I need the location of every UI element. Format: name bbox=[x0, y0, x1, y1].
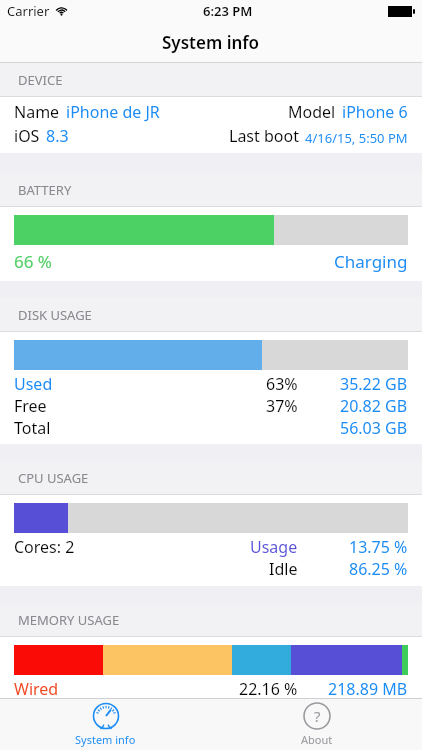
staticText: Last boot bbox=[229, 125, 299, 147]
staticText: Name bbox=[14, 101, 60, 123]
staticText: Charging bbox=[334, 250, 408, 273]
staticText: 35.22 GB bbox=[340, 373, 408, 395]
staticText: Free bbox=[14, 395, 47, 417]
staticText: 56.03 GB bbox=[340, 417, 408, 439]
staticText: Cores: 2 bbox=[14, 536, 75, 558]
staticText: BATTERY bbox=[18, 181, 72, 199]
staticText: 37% bbox=[266, 395, 298, 417]
staticText: Model bbox=[288, 101, 336, 123]
staticText: 66 % bbox=[14, 250, 52, 273]
staticText: System info bbox=[162, 31, 260, 54]
staticText: 4/16/15, 5:50 PM bbox=[305, 129, 408, 147]
staticText: 86.25 % bbox=[349, 558, 408, 580]
staticText: ? bbox=[314, 706, 321, 726]
staticText: Wired bbox=[14, 678, 59, 700]
staticText: Used bbox=[14, 373, 53, 395]
button[interactable]: System info bbox=[0, 699, 211, 750]
staticText: 8.3 bbox=[46, 125, 69, 147]
button[interactable]: About bbox=[211, 699, 422, 750]
staticText: Idle bbox=[269, 558, 298, 580]
staticText: 63% bbox=[266, 373, 298, 395]
staticText: 22.16 % bbox=[239, 678, 298, 700]
staticText: iPhone de JR bbox=[66, 101, 160, 123]
staticText: MEMORY USAGE bbox=[18, 611, 120, 629]
staticText: 218.89 MB bbox=[328, 678, 408, 700]
other: About bbox=[303, 702, 331, 730]
staticText: Total bbox=[14, 417, 51, 439]
staticText: 20.82 GB bbox=[340, 395, 408, 417]
other: System info bbox=[92, 702, 120, 730]
staticText: 13.75 % bbox=[349, 536, 408, 558]
staticText: CPU USAGE bbox=[18, 469, 89, 487]
staticText: About bbox=[301, 732, 333, 747]
staticText: iPhone 6 bbox=[342, 101, 408, 123]
staticText: Carrier bbox=[7, 2, 50, 20]
staticText: iOS bbox=[14, 125, 40, 147]
staticText: Usage bbox=[250, 536, 298, 558]
staticText: 300.00 MB bbox=[328, 700, 408, 722]
staticText: DEVICE bbox=[18, 71, 63, 89]
staticText: DISK USAGE bbox=[18, 306, 92, 324]
staticText: 6:23 PM bbox=[203, 2, 253, 20]
staticText: System info bbox=[75, 732, 136, 747]
